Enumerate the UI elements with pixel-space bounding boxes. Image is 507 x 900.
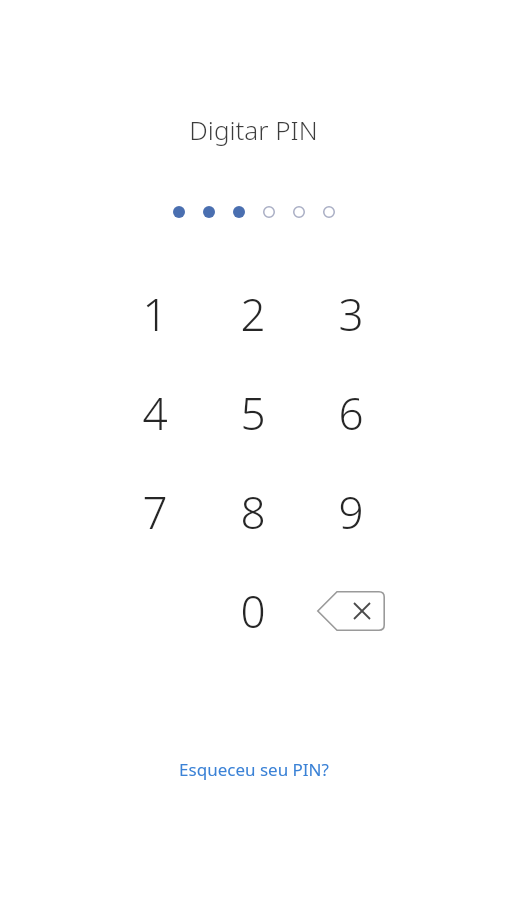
staticText: 1 [142, 284, 168, 344]
button[interactable]: 1 [106, 264, 204, 363]
staticText: 8 [240, 482, 266, 542]
button[interactable]: 3 [302, 264, 400, 363]
staticText: 4 [142, 383, 168, 443]
button[interactable]: Apagar [302, 561, 400, 660]
staticText: Digitar PIN [189, 112, 318, 147]
staticText: 9 [338, 482, 364, 542]
button[interactable]: 8 [204, 462, 302, 561]
staticText: 0 [240, 581, 266, 641]
button[interactable]: 4 [106, 363, 204, 462]
button[interactable]: 5 [204, 363, 302, 462]
button[interactable]: 7 [106, 462, 204, 561]
button[interactable]: 0 [204, 561, 302, 660]
staticText: 6 [338, 383, 364, 443]
button[interactable]: Esqueceu seu PIN? [0, 758, 507, 781]
staticText: 2 [240, 284, 266, 344]
button[interactable]: 6 [302, 363, 400, 462]
staticText: 5 [240, 383, 266, 443]
staticText: Esqueceu seu PIN? [179, 758, 329, 781]
button[interactable]: 9 [302, 462, 400, 561]
staticText: 3 [338, 284, 364, 344]
staticText: 7 [142, 482, 168, 542]
button[interactable]: 2 [204, 264, 302, 363]
